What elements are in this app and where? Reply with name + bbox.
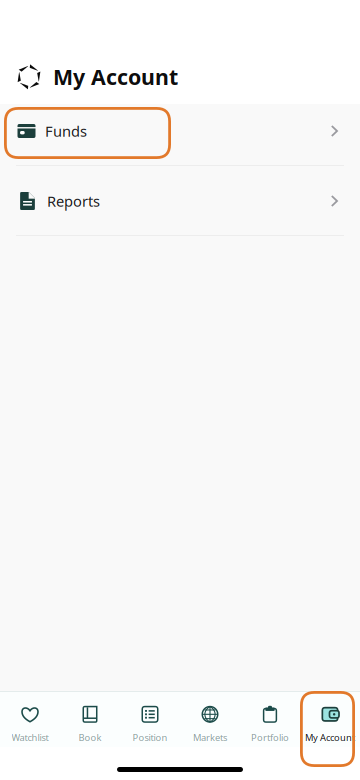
button[interactable]: Reports [0, 166, 360, 236]
staticText: Portfolio [251, 731, 289, 744]
staticText: Reports [47, 191, 100, 211]
button[interactable]: Position [120, 695, 180, 744]
staticText: My Account [305, 731, 355, 744]
button[interactable]: Book [60, 695, 120, 744]
button[interactable]: Markets [180, 695, 240, 744]
staticText: Markets [193, 731, 227, 744]
button[interactable]: Portfolio [240, 695, 300, 744]
button[interactable]: My Account [300, 695, 360, 744]
button[interactable]: Funds [0, 96, 360, 166]
button[interactable]: Watchlist [0, 695, 60, 744]
staticText: Funds [45, 121, 87, 141]
staticText: My Account [53, 63, 178, 91]
staticText: Position [132, 731, 167, 744]
staticText: Watchlist [11, 731, 48, 744]
staticText: Book [78, 731, 101, 744]
